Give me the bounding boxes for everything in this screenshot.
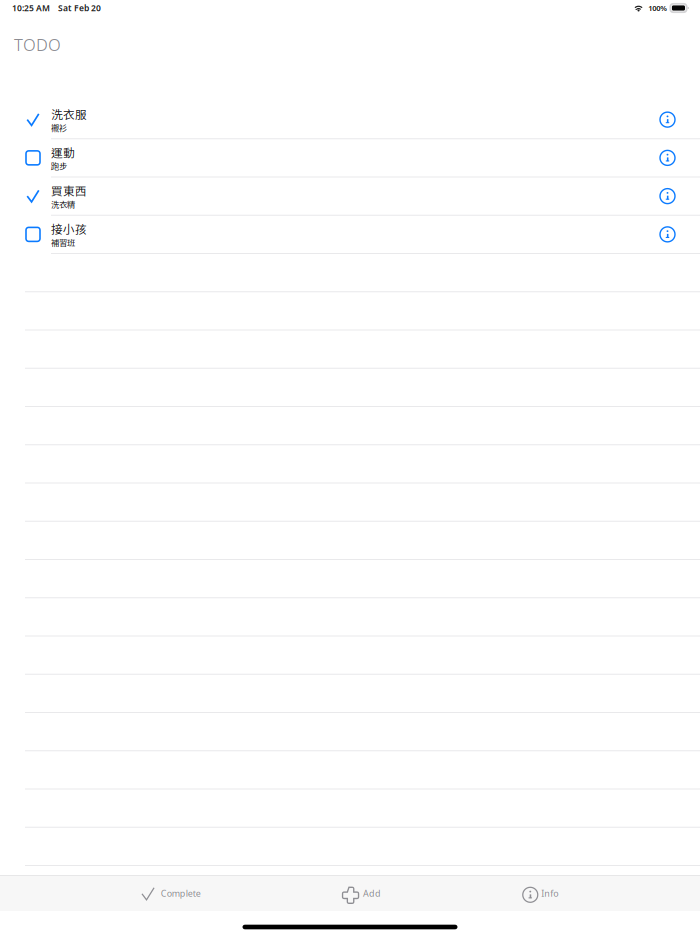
staticText: Sat Feb 20 — [58, 2, 101, 14]
button[interactable]: 洗衣服 — [0, 101, 700, 138]
staticText: Add — [363, 887, 381, 899]
staticText: TODO — [14, 33, 61, 56]
button[interactable]: Complete — [142, 878, 201, 909]
button[interactable]: Add — [342, 876, 381, 910]
button[interactable]: Details for 買東西 — [651, 180, 684, 213]
staticText: 接小孩 — [51, 220, 87, 237]
button[interactable]: Info — [523, 877, 558, 910]
staticText: 買東西 — [51, 182, 87, 199]
button[interactable]: 接小孩 — [0, 216, 700, 253]
staticText: 運動 — [51, 144, 75, 161]
button[interactable]: Details for 運動 — [651, 141, 684, 174]
staticText: 10:25 AM — [12, 2, 50, 14]
button[interactable]: 買東西 — [0, 177, 700, 215]
staticText: 洗衣精 — [51, 198, 75, 210]
button[interactable]: Details for 接小孩 — [651, 218, 684, 251]
staticText: Complete — [161, 887, 201, 899]
staticText: Info — [541, 887, 558, 899]
button[interactable]: Details for 洗衣服 — [651, 103, 684, 136]
staticText: 100% — [648, 3, 667, 13]
staticText: 補習班 — [51, 236, 75, 248]
staticText: 襯衫 — [51, 122, 67, 134]
staticText: 洗衣服 — [51, 106, 87, 122]
button[interactable]: 運動 — [0, 139, 700, 176]
staticText: 跑步 — [51, 160, 67, 172]
